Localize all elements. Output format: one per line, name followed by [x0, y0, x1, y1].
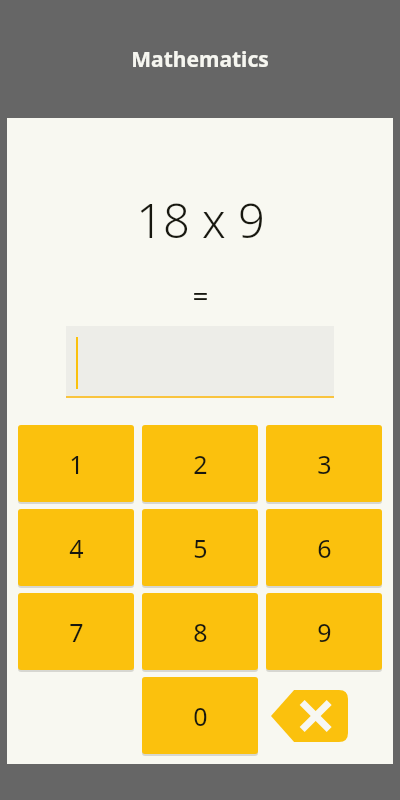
button[interactable]: 9: [266, 593, 382, 670]
staticText: 5: [193, 531, 208, 565]
button[interactable]: 0: [142, 677, 258, 754]
button[interactable]: 1: [18, 425, 134, 502]
staticText: Mathematics: [131, 45, 269, 74]
staticText: 3: [317, 447, 332, 481]
staticText: 1: [69, 447, 84, 481]
staticText: 2: [193, 447, 208, 481]
staticText: 8: [193, 615, 208, 649]
button[interactable]: 7: [18, 593, 134, 670]
staticText: 4: [69, 531, 84, 565]
button[interactable]: [66, 326, 334, 398]
staticText: 18 x 9: [136, 188, 265, 252]
button[interactable]: 4: [18, 509, 134, 586]
staticText: 6: [317, 531, 332, 565]
button[interactable]: Backspace: [271, 690, 348, 742]
button[interactable]: 8: [142, 593, 258, 670]
staticText: 9: [317, 615, 332, 649]
staticText: =: [192, 276, 209, 314]
staticText: 7: [69, 615, 84, 649]
button[interactable]: 3: [266, 425, 382, 502]
button[interactable]: 5: [142, 509, 258, 586]
button[interactable]: 6: [266, 509, 382, 586]
button[interactable]: 2: [142, 425, 258, 502]
staticText: 0: [193, 699, 208, 733]
